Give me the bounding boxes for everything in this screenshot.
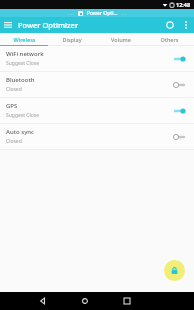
button[interactable]: Toggle [170,130,188,144]
button[interactable]: GPS [0,98,194,124]
button[interactable]: Auto sync [0,124,194,150]
staticText: Auto sync [6,128,35,136]
button[interactable]: Bluetooth [0,72,194,98]
button[interactable]: Volume [96,33,145,45]
button[interactable]: Lock optimization [164,260,185,281]
staticText: Closed [6,138,22,145]
staticText: Suggest Close [6,112,39,119]
staticText: Suggest Close [6,60,39,67]
button[interactable]: Toggle [170,104,188,118]
staticText: Display [62,36,82,43]
staticText: 12:48 [176,1,191,8]
button[interactable]: Toggle [170,52,188,66]
button[interactable]: Back [34,292,52,310]
button[interactable]: Open navigation drawer [0,17,16,33]
staticText: · · · [68,11,74,17]
button[interactable]: Toggle [170,78,188,92]
button[interactable]: Home [76,292,94,310]
staticText: Power Optimizer [18,20,79,30]
button[interactable]: WiFi network [0,46,194,72]
staticText: Wireless [13,36,36,43]
staticText: Power Opti... [87,10,118,17]
button[interactable]: Optimize [162,17,178,33]
button[interactable]: Display [48,33,96,45]
button[interactable]: Others [145,33,194,45]
staticText: GPS [6,102,18,110]
staticText: Others [160,36,179,43]
staticText: WiFi network [6,50,44,58]
staticText: · · [122,11,126,17]
button[interactable]: Wireless [0,33,48,45]
staticText: Bluetooth [6,76,35,84]
staticText: Closed [6,86,22,93]
button[interactable]: More options [178,17,194,33]
button[interactable]: Recent apps [118,292,136,310]
staticText: Volume [111,36,131,43]
